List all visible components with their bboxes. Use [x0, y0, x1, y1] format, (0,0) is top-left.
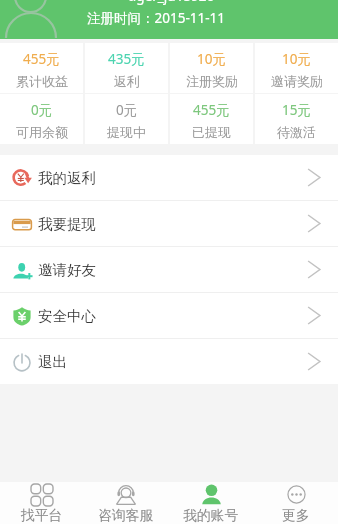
staticText: 455元 — [23, 50, 60, 68]
staticText: 邀请好友 — [38, 261, 96, 279]
button[interactable]: 我的账号 — [168, 482, 253, 524]
staticText: 邀请奖励 — [271, 73, 323, 89]
staticText: 返利 — [114, 73, 140, 89]
staticText: 我要提现 — [38, 215, 96, 233]
staticText: 0元 — [31, 101, 53, 119]
staticText: 我的返利 — [38, 169, 96, 187]
staticText: 435元 — [108, 50, 145, 68]
button[interactable]: 我要提现 — [0, 201, 338, 246]
staticText: 10元 — [197, 50, 226, 68]
button[interactable]: 安全中心 — [0, 293, 338, 338]
staticText: 提现中 — [107, 124, 146, 140]
staticText: 注册时间：2015-11-11 — [87, 9, 225, 27]
button[interactable]: 退出 — [0, 339, 338, 384]
staticText: 咨询客服 — [98, 507, 154, 524]
staticText: 已提现 — [192, 124, 231, 140]
staticText: 455元 — [193, 101, 230, 119]
button[interactable]: 更多 — [253, 482, 338, 524]
staticText: 退出 — [38, 353, 67, 371]
staticText: 10元 — [282, 50, 311, 68]
button[interactable]: 我的返利 — [0, 155, 338, 200]
staticText: 更多 — [282, 507, 310, 524]
staticText: 累计收益 — [16, 73, 68, 89]
button[interactable]: 找平台 — [0, 482, 84, 524]
staticText: 0元 — [116, 101, 138, 119]
staticText: 待激活 — [277, 124, 316, 140]
staticText: 15元 — [282, 101, 311, 119]
staticText: 安全中心 — [38, 307, 96, 325]
button[interactable]: 咨询客服 — [84, 482, 168, 524]
staticText: 可用余额 — [16, 124, 68, 140]
staticText: 注册奖励 — [186, 73, 238, 89]
staticText: tiger_ju15926 — [128, 0, 215, 5]
other: Avatar — [0, 0, 338, 39]
staticText: 找平台 — [21, 507, 63, 524]
button[interactable]: 邀请好友 — [0, 247, 338, 292]
staticText: 我的账号 — [183, 507, 239, 524]
